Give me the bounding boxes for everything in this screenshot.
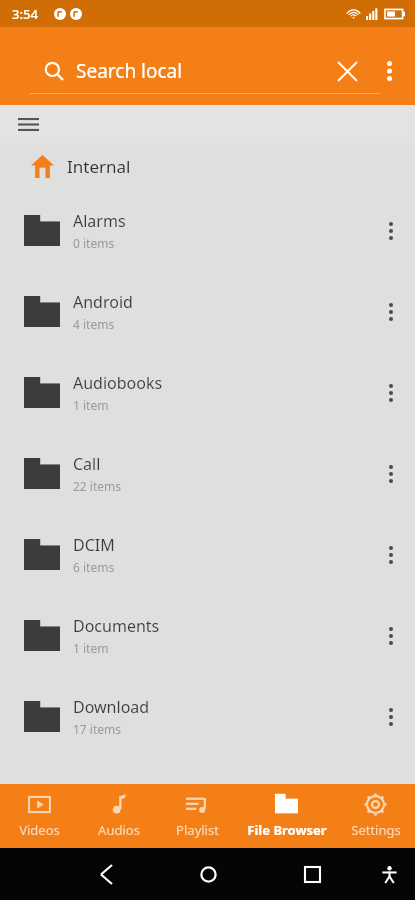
staticText: Audios xyxy=(98,821,140,839)
button[interactable]: DCIM xyxy=(0,514,415,595)
button[interactable]: Internal xyxy=(0,143,415,190)
button[interactable]: More options for Call xyxy=(369,452,413,496)
button[interactable]: Playlist xyxy=(158,784,237,848)
staticText: Search local xyxy=(76,58,183,84)
staticText: Internal xyxy=(67,155,131,178)
staticText: 22 items xyxy=(73,478,122,494)
button[interactable]: More options for DCIM xyxy=(369,533,413,577)
button[interactable]: More options for Audiobooks xyxy=(369,371,413,415)
button[interactable]: Audios xyxy=(79,784,158,848)
button[interactable]: More options for Download xyxy=(369,695,413,739)
button[interactable]: Recent apps xyxy=(291,853,333,895)
staticText: Alarms xyxy=(73,210,126,232)
staticText: 17 items xyxy=(73,721,122,737)
staticText: Audiobooks xyxy=(73,372,163,394)
staticText: Call xyxy=(73,453,101,475)
staticText: File Browser xyxy=(247,821,327,839)
button[interactable]: File Browser xyxy=(237,784,336,848)
staticText: 1 item xyxy=(73,397,109,413)
button[interactable]: Menu xyxy=(8,105,48,143)
staticText: 4 items xyxy=(73,316,115,332)
button[interactable]: Download xyxy=(0,676,415,757)
staticText: Download xyxy=(73,696,150,718)
staticText: DCIM xyxy=(73,534,115,556)
button[interactable]: Call xyxy=(0,433,415,514)
button[interactable]: Accessibility xyxy=(369,854,409,894)
button[interactable]: Clear search xyxy=(325,49,369,93)
button[interactable]: More options for Documents xyxy=(369,614,413,658)
staticText: Videos xyxy=(19,821,60,839)
button[interactable]: Home xyxy=(187,853,229,895)
staticText: 1 item xyxy=(73,640,109,656)
button[interactable]: Alarms xyxy=(0,190,415,271)
staticText: 3:54 xyxy=(12,5,38,23)
button[interactable]: More options for Android xyxy=(369,290,413,334)
staticText: Documents xyxy=(73,615,160,637)
button[interactable]: More options xyxy=(369,51,409,91)
button[interactable]: Videos xyxy=(0,784,79,848)
button[interactable]: Android xyxy=(0,271,415,352)
button[interactable]: Settings xyxy=(336,784,415,848)
staticText: Android xyxy=(73,291,133,313)
button[interactable]: More options for Alarms xyxy=(369,209,413,253)
staticText: 6 items xyxy=(73,559,115,575)
staticText: Playlist xyxy=(176,821,219,839)
button[interactable]: Audiobooks xyxy=(0,352,415,433)
button[interactable]: Back xyxy=(85,853,127,895)
button[interactable]: Documents xyxy=(0,595,415,676)
staticText: Settings xyxy=(351,821,401,839)
staticText: 0 items xyxy=(73,235,115,251)
